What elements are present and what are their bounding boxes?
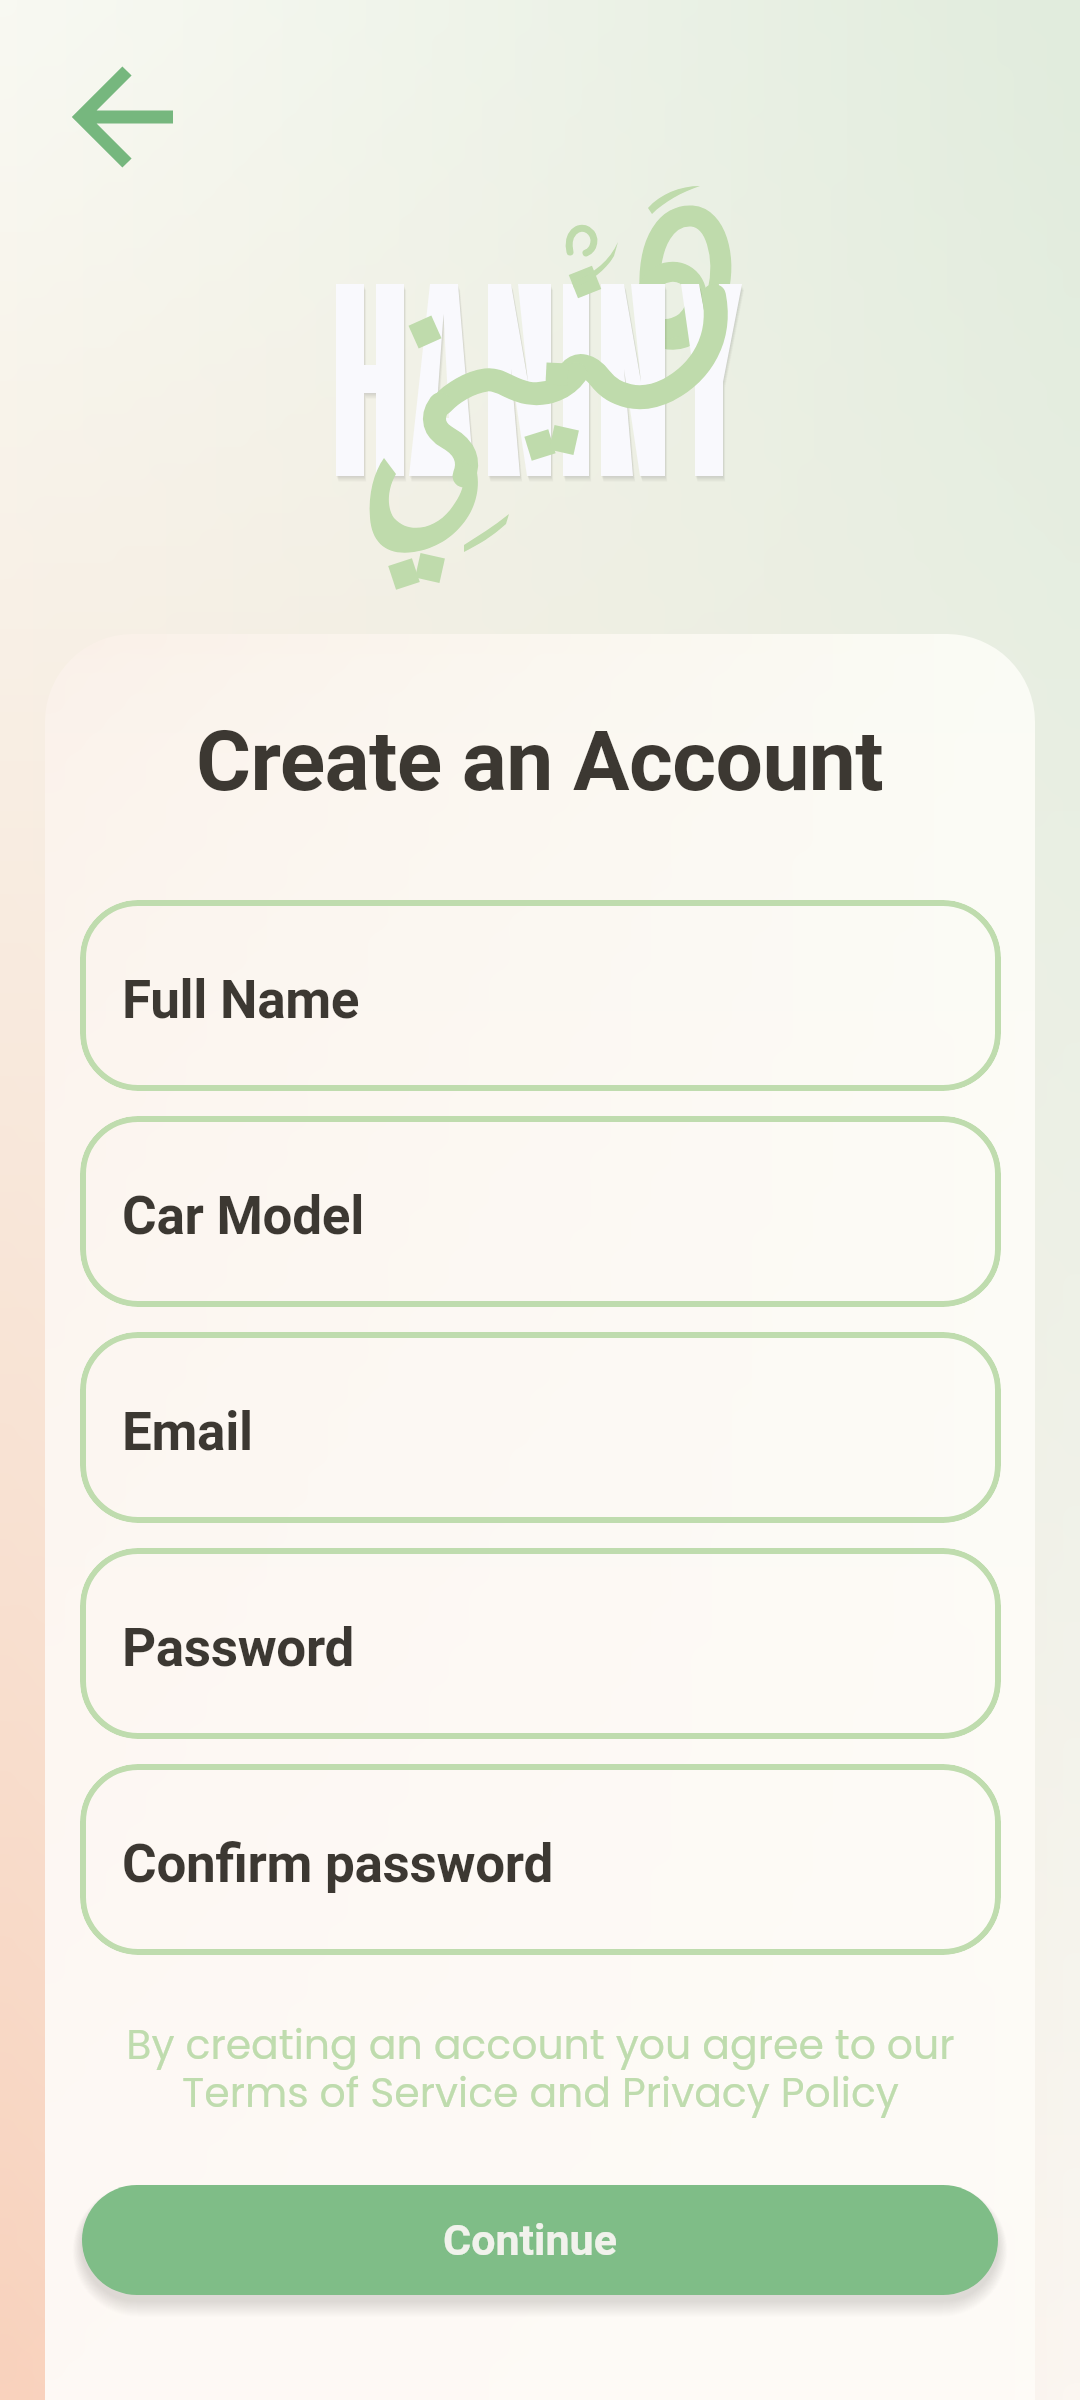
button[interactable]: Full Name [80, 900, 1001, 1091]
button[interactable]: Car Model [80, 1116, 1001, 1307]
staticText: Password [122, 1617, 355, 1679]
staticText: Confirm password [122, 1833, 554, 1895]
staticText: Create an Account [196, 712, 884, 810]
button[interactable]: Continue [82, 2185, 998, 2295]
staticText: Email [122, 1401, 253, 1463]
button[interactable]: Back [46, 52, 188, 182]
button[interactable]: Password [80, 1548, 1001, 1739]
button[interactable]: Email [80, 1332, 1001, 1523]
button[interactable]: Confirm password [80, 1764, 1001, 1955]
staticText: Continue [443, 2215, 617, 2265]
staticText: By creating an account you agree to our … [126, 2016, 955, 2122]
staticText: Car Model [122, 1185, 364, 1247]
staticText: Full Name [122, 969, 360, 1031]
